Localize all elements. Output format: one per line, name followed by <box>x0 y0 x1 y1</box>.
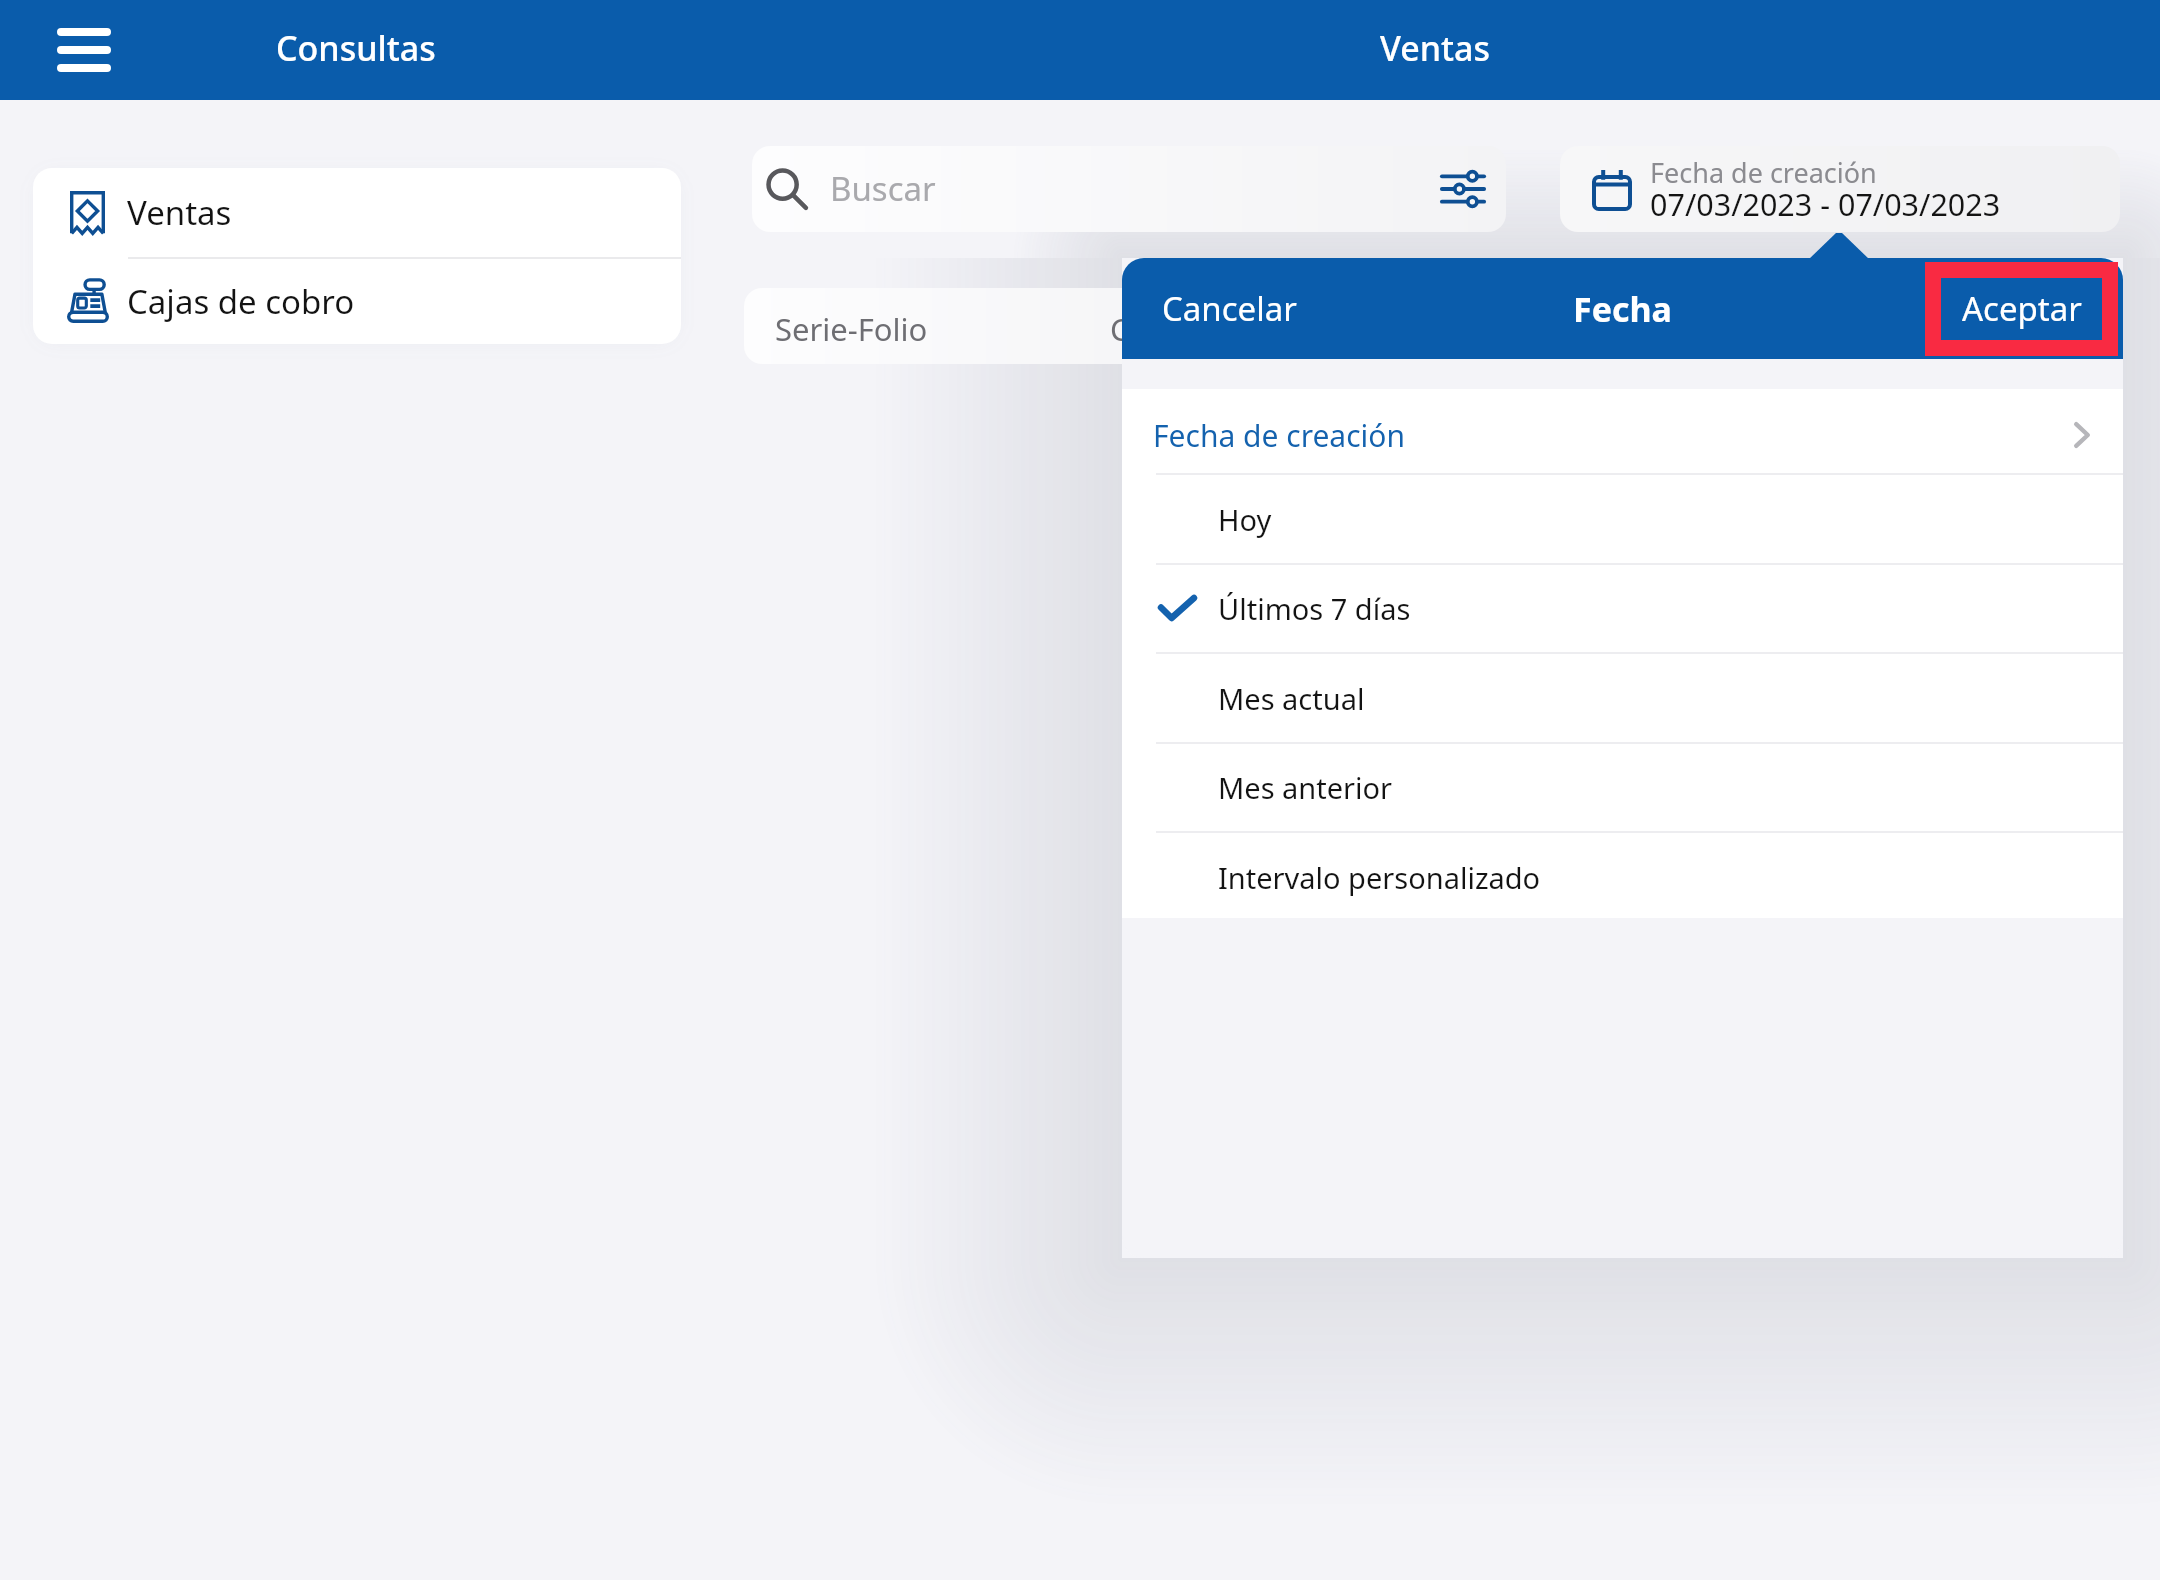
staticText: Fecha de creación <box>1650 154 1877 191</box>
button[interactable]: Mes anterior <box>1122 743 2123 831</box>
button[interactable]: Serie-Folio <box>744 288 1444 364</box>
button[interactable]: Menú <box>36 16 132 84</box>
staticText: Serie-Folio <box>775 308 928 350</box>
staticText: 07/03/2023 - 07/03/2023 <box>1650 183 2001 225</box>
button[interactable]: Ventas <box>33 168 681 257</box>
staticText: Fecha de creación <box>1153 415 1405 456</box>
staticText: Hoy <box>1218 500 1272 539</box>
other: Abrir <box>2074 422 2090 448</box>
staticText: Cliente <box>1110 308 1211 350</box>
staticText: Aceptar <box>1962 286 2082 331</box>
button[interactable]: Cancelar <box>1149 272 1309 344</box>
button[interactable]: Últimos 7 días <box>1122 564 2123 652</box>
staticText: Ventas <box>127 190 232 235</box>
staticText: Ventas <box>1380 25 1491 71</box>
button[interactable]: Intervalo personalizado <box>1122 833 2123 921</box>
staticText: Consultas <box>276 25 436 71</box>
button[interactable]: Fecha de creación <box>1560 146 2120 232</box>
button[interactable]: Buscar <box>752 146 1506 232</box>
staticText: Mes actual <box>1218 679 1365 718</box>
button[interactable]: Filtros <box>1420 146 1506 232</box>
button[interactable]: Hoy <box>1122 475 2123 563</box>
staticText: Cajas de cobro <box>127 279 355 324</box>
button[interactable]: Mes actual <box>1122 654 2123 742</box>
button[interactable]: Fecha de creación <box>1122 389 2123 473</box>
staticText: Fecha <box>1573 286 1672 332</box>
button[interactable]: Aceptar <box>1941 272 2103 344</box>
staticText: Buscar <box>830 166 936 211</box>
button[interactable]: Cajas de cobro <box>33 258 681 344</box>
staticText: Cancelar <box>1162 286 1297 331</box>
staticText: Intervalo personalizado <box>1218 858 1541 897</box>
staticText: Mes anterior <box>1218 768 1393 807</box>
staticText: Últimos 7 días <box>1218 589 1411 628</box>
